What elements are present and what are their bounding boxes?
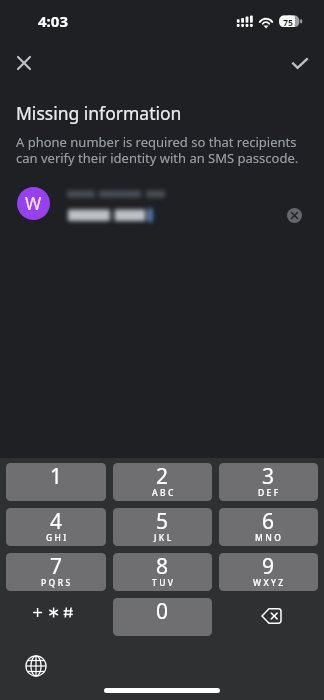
button[interactable]: 8 <box>113 553 212 591</box>
button[interactable]: Change keyboard language <box>24 654 47 677</box>
button[interactable]: Clear <box>280 201 308 229</box>
button[interactable]: 2 <box>113 463 212 501</box>
button[interactable]: 5 <box>113 508 212 546</box>
button[interactable] <box>6 598 106 636</box>
staticText: ABC <box>152 487 176 499</box>
staticText: 1 <box>50 463 63 491</box>
button[interactable]: 3 <box>219 463 318 501</box>
button[interactable]: Save <box>277 43 323 83</box>
staticText: TUV <box>152 577 176 589</box>
button[interactable]: 1 <box>6 463 106 501</box>
staticText: Missing information <box>16 101 182 125</box>
staticText: 3 <box>262 463 275 491</box>
button[interactable]: 6 <box>219 508 318 546</box>
button[interactable]: 4 <box>6 508 106 546</box>
staticText: 4 <box>50 508 63 536</box>
staticText: MNO <box>255 532 284 544</box>
button[interactable]: Backspace <box>219 598 318 636</box>
staticText: W <box>25 191 42 215</box>
staticText: JKL <box>154 532 174 544</box>
staticText: WXYZ <box>253 577 286 589</box>
staticText: 7 <box>50 553 63 581</box>
staticText: DEF <box>258 487 281 499</box>
button[interactable]: W <box>0 180 324 226</box>
button[interactable]: 7 <box>6 553 106 591</box>
button[interactable]: 9 <box>219 553 318 591</box>
staticText: 4:03 <box>38 11 68 31</box>
staticText: 0 <box>156 598 169 626</box>
staticText: 2 <box>156 463 169 491</box>
button[interactable]: 0 <box>113 598 212 636</box>
staticText: 9 <box>262 553 275 581</box>
staticText: 75 <box>283 17 294 29</box>
staticText: 5 <box>156 508 169 536</box>
staticText: 8 <box>156 553 169 581</box>
staticText: PQRS <box>41 577 73 589</box>
button[interactable]: Close <box>1 43 47 83</box>
staticText: GHI <box>46 532 69 544</box>
staticText: A phone number is required so that recip… <box>16 133 299 167</box>
staticText: 6 <box>262 508 275 536</box>
